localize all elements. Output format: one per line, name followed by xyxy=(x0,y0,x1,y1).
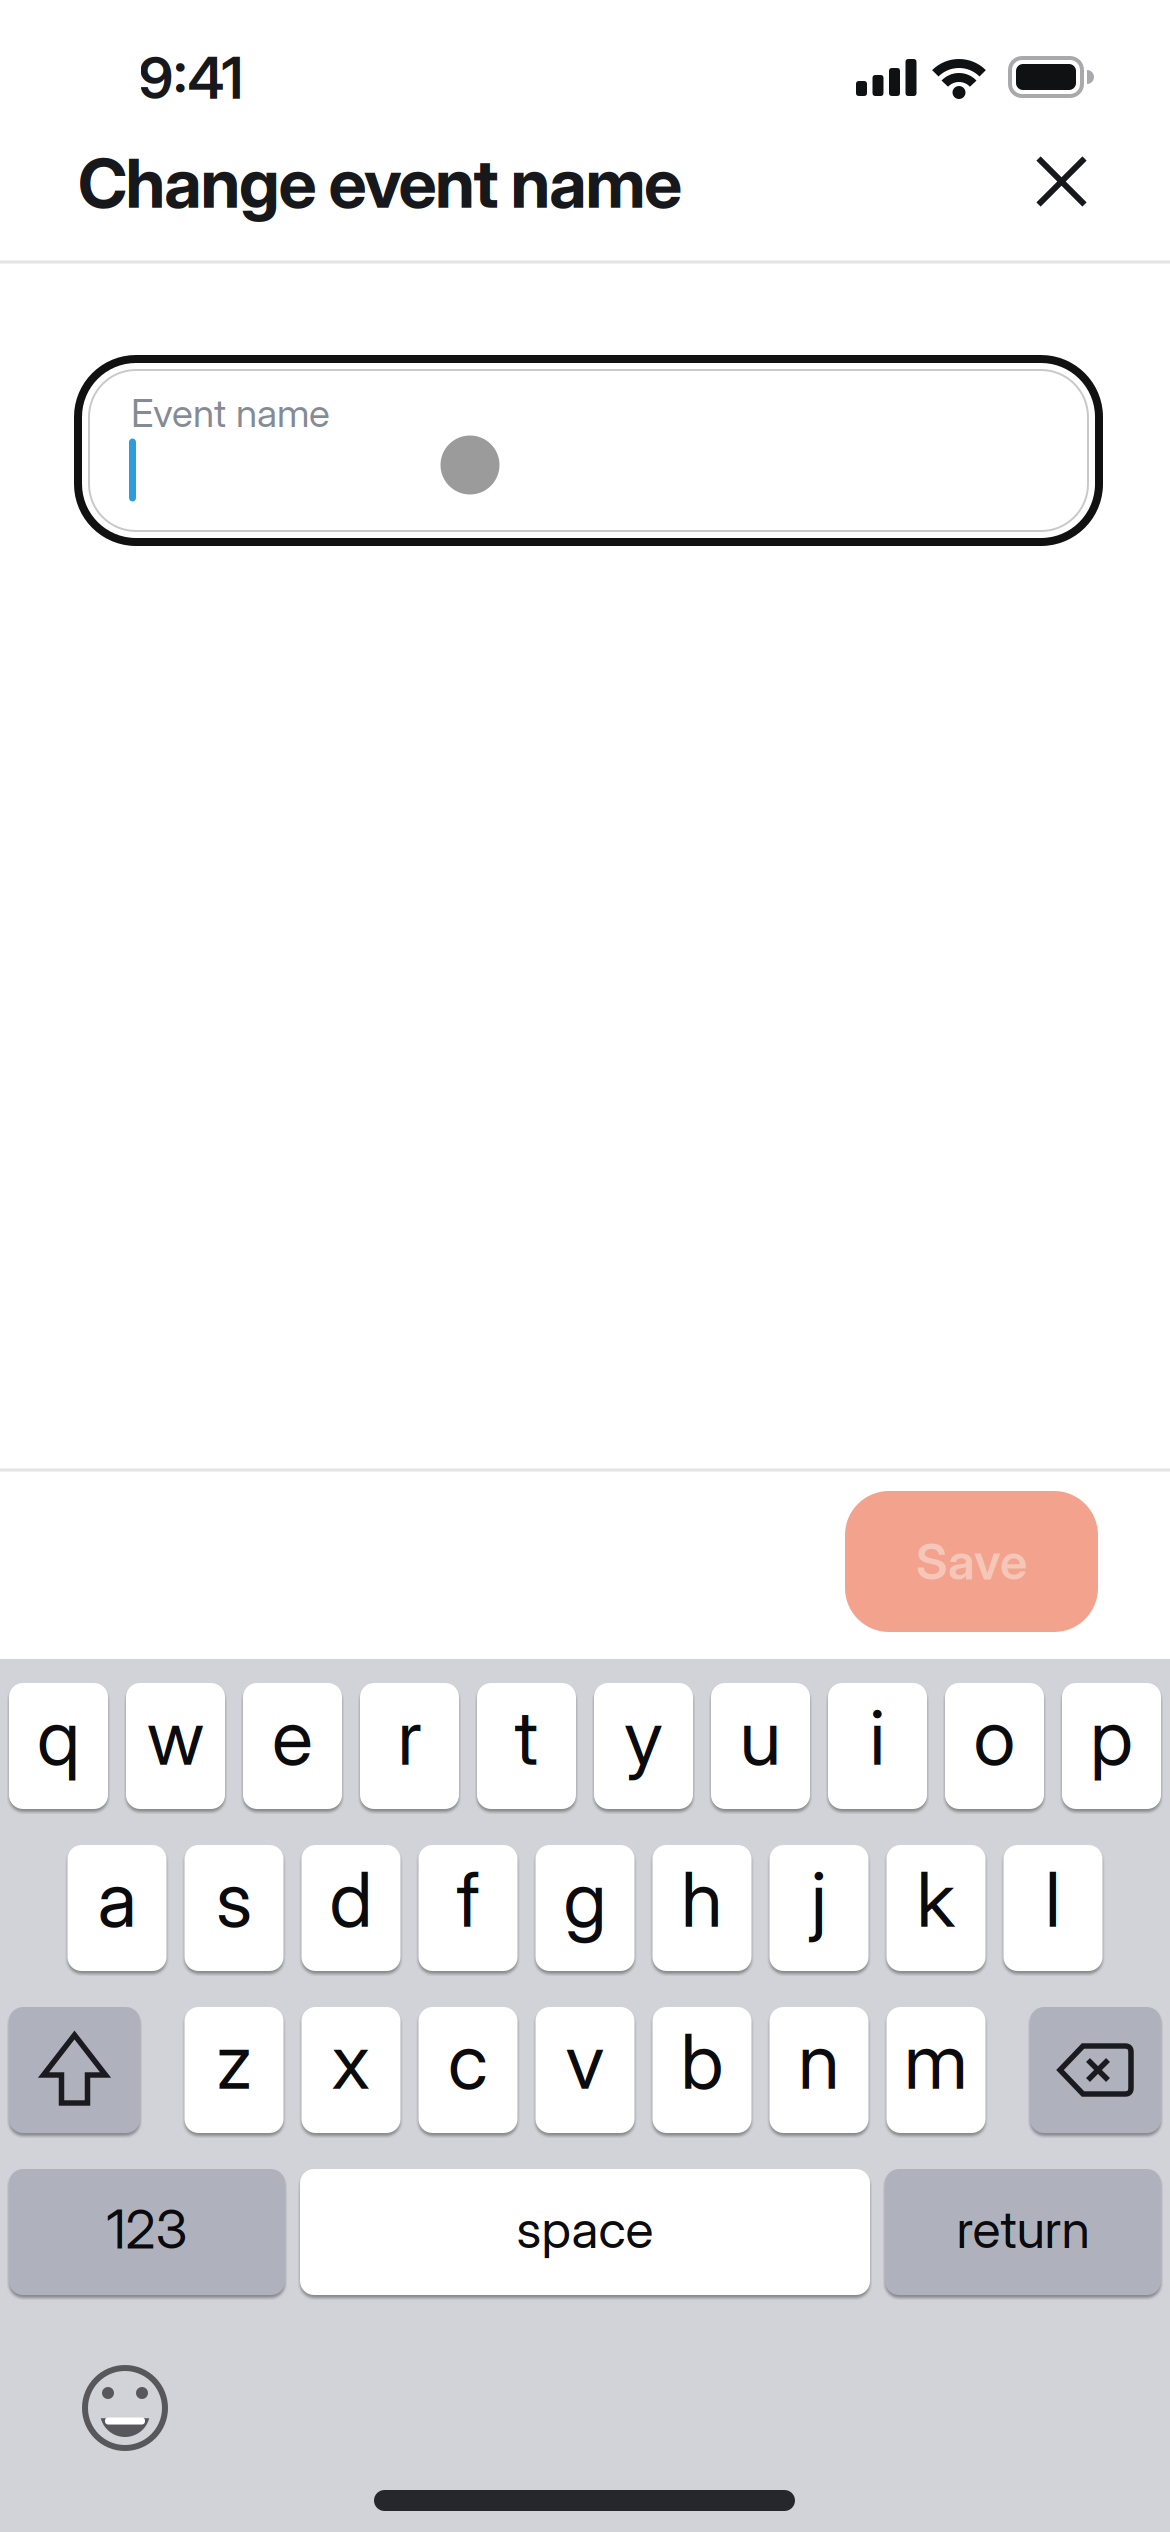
button[interactable]: m xyxy=(886,2007,985,2133)
staticText: j xyxy=(811,1854,827,1944)
button[interactable]: Emoji xyxy=(75,2358,175,2458)
staticText: b xyxy=(680,2016,723,2106)
staticText: c xyxy=(448,2016,488,2106)
button[interactable]: q xyxy=(9,1683,108,1809)
button[interactable]: y xyxy=(594,1683,693,1809)
button[interactable]: p xyxy=(1062,1683,1161,1809)
button[interactable]: c xyxy=(418,2007,517,2133)
staticText: o xyxy=(973,1692,1015,1782)
staticText: m xyxy=(904,2016,968,2106)
button[interactable]: r xyxy=(360,1683,459,1809)
button[interactable]: n xyxy=(769,2007,868,2133)
staticText: q xyxy=(37,1692,80,1782)
staticText: z xyxy=(216,2016,252,2106)
button[interactable]: i xyxy=(828,1683,927,1809)
staticText: i xyxy=(869,1692,885,1782)
button[interactable]: Save xyxy=(845,1491,1098,1632)
button[interactable]: f xyxy=(418,1845,517,1971)
staticText: u xyxy=(739,1692,781,1782)
button[interactable]: return xyxy=(885,2169,1161,2295)
staticText: r xyxy=(397,1692,421,1782)
button[interactable]: x xyxy=(301,2007,400,2133)
staticText: t xyxy=(514,1692,538,1782)
button[interactable]: j xyxy=(769,1845,868,1971)
staticText: x xyxy=(331,2016,370,2106)
staticText: v xyxy=(565,2016,604,2106)
button[interactable]: space xyxy=(300,2169,870,2295)
staticText: w xyxy=(147,1692,204,1782)
staticText: space xyxy=(516,2198,653,2260)
staticText: a xyxy=(97,1854,136,1944)
staticText: e xyxy=(272,1692,313,1782)
button[interactable]: Close xyxy=(1016,136,1106,226)
staticText: k xyxy=(916,1854,955,1944)
button[interactable]: a xyxy=(67,1845,166,1971)
staticText: return xyxy=(956,2198,1089,2260)
button[interactable]: s xyxy=(184,1845,283,1971)
button[interactable]: k xyxy=(886,1845,985,1971)
button[interactable]: g xyxy=(535,1845,634,1971)
button[interactable]: Delete xyxy=(1030,2007,1161,2133)
button[interactable]: d xyxy=(301,1845,400,1971)
button[interactable]: v xyxy=(535,2007,634,2133)
button[interactable]: w xyxy=(126,1683,225,1809)
staticText: d xyxy=(329,1854,372,1944)
staticText: h xyxy=(681,1854,723,1944)
staticText: Change event name xyxy=(78,143,682,223)
button[interactable]: Shift xyxy=(9,2007,140,2133)
staticText: Save xyxy=(916,1532,1027,1591)
staticText: g xyxy=(563,1854,606,1944)
button[interactable]: Event name xyxy=(74,355,1103,546)
staticText: l xyxy=(1045,1854,1061,1944)
button[interactable]: z xyxy=(184,2007,283,2133)
staticText: p xyxy=(1090,1692,1133,1782)
staticText: s xyxy=(216,1854,252,1944)
button[interactable]: u xyxy=(711,1683,810,1809)
staticText: Event name xyxy=(131,390,330,436)
button[interactable]: h xyxy=(652,1845,751,1971)
button[interactable]: 123 xyxy=(9,2169,285,2295)
staticText: f xyxy=(456,1854,479,1944)
button[interactable]: t xyxy=(477,1683,576,1809)
button[interactable]: l xyxy=(1003,1845,1102,1971)
staticText: y xyxy=(624,1692,663,1782)
staticText: 123 xyxy=(106,2197,187,2260)
button[interactable]: o xyxy=(945,1683,1044,1809)
staticText: n xyxy=(798,2016,840,2106)
staticText: 9:41 xyxy=(138,44,243,112)
button[interactable]: b xyxy=(652,2007,751,2133)
button[interactable]: e xyxy=(243,1683,342,1809)
